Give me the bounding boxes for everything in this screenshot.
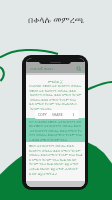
staticText: ክርስቲያን መጽሐፍ ቅዱስ አማርኛ ትርጉም <box>29 92 83 97</box>
staticText: SHARE <box>52 112 63 117</box>
staticText: ተዋህዶ ቤተ ክርስቲያን መጽሐፍ ቅዱስ አማር <box>29 88 83 93</box>
staticText: ፍ ቅዱስ አማርኛ ትርጉም ንባብ <box>29 137 67 142</box>
staticText: ክርስቲያን መጽሐፍ ቅዱስ አማርኛ ትርጉም ን <box>29 148 82 153</box>
button[interactable]: More options <box>71 112 76 117</box>
staticText: ቤተ ክርስቲያን መጽሐፍ ቅዱስ አማርኛ ትር <box>29 128 82 133</box>
staticText: ብ ክፍል ስለ ሰው ልጅ ድኅነት ታሪክየኢት <box>29 166 80 171</box>
staticText: ኦርቶዶክስ ተዋህዶ ቤተ ክርስቲያን መጽሐፍ <box>29 83 83 88</box>
staticText: ስ አማርኛ ትርጉም ንባብ ክፍል ስለ ሰው <box>29 157 81 162</box>
staticText: COPY <box>38 112 47 117</box>
staticText: ክስ ተዋህዶ ቤተ ክርስቲያን መጽሐፍ ቅዱስ <box>29 123 83 128</box>
staticText: መጽሐፍ ቅዱስ አማርኛ ትርጉም ንባብ ክፍል <box>29 152 83 157</box>
staticText: መጽሐፍ ቅዱስ አማርኛ ትርጉም ንባብ ክፍል <box>29 97 82 102</box>
staticText: በቀላሉ መምረጫ <box>0 13 112 25</box>
staticText: ትርጉም ንባብ ክፍ <box>29 106 53 111</box>
staticText: ምዕራፍ ፩ <box>48 79 63 84</box>
button[interactable]: SHARE <box>52 112 63 117</box>
button[interactable]: Search <box>76 66 82 72</box>
staticText: መጽሐፍ ቅዱስ <box>30 66 53 72</box>
staticText: ዱስ አማርኛ ትርጉም ንባብ ክፍል ስለ ሰ <box>29 101 79 106</box>
staticText: ቲያን መጽሐፍ ቅዱስ አማርኛ ትርጉም ንባብ <box>29 132 83 137</box>
staticText: ጵያ ኦርቶዶክስ ተዋህዶ ቤተ ክርስቲያን መጽ <box>29 119 83 124</box>
staticText: ዋህዶ ቤተ ክርስቲያን መጽሐፍ ቅዱስ አማርኛ <box>29 143 83 148</box>
staticText: ትርጉም ንባብ ክፍል ስለ ሰው ልጅ ድኅነት <box>29 161 83 166</box>
staticText: ለ ሰው ልጅ ድኅነት ታሪ <box>29 171 59 176</box>
button[interactable]: COPY <box>38 112 47 117</box>
